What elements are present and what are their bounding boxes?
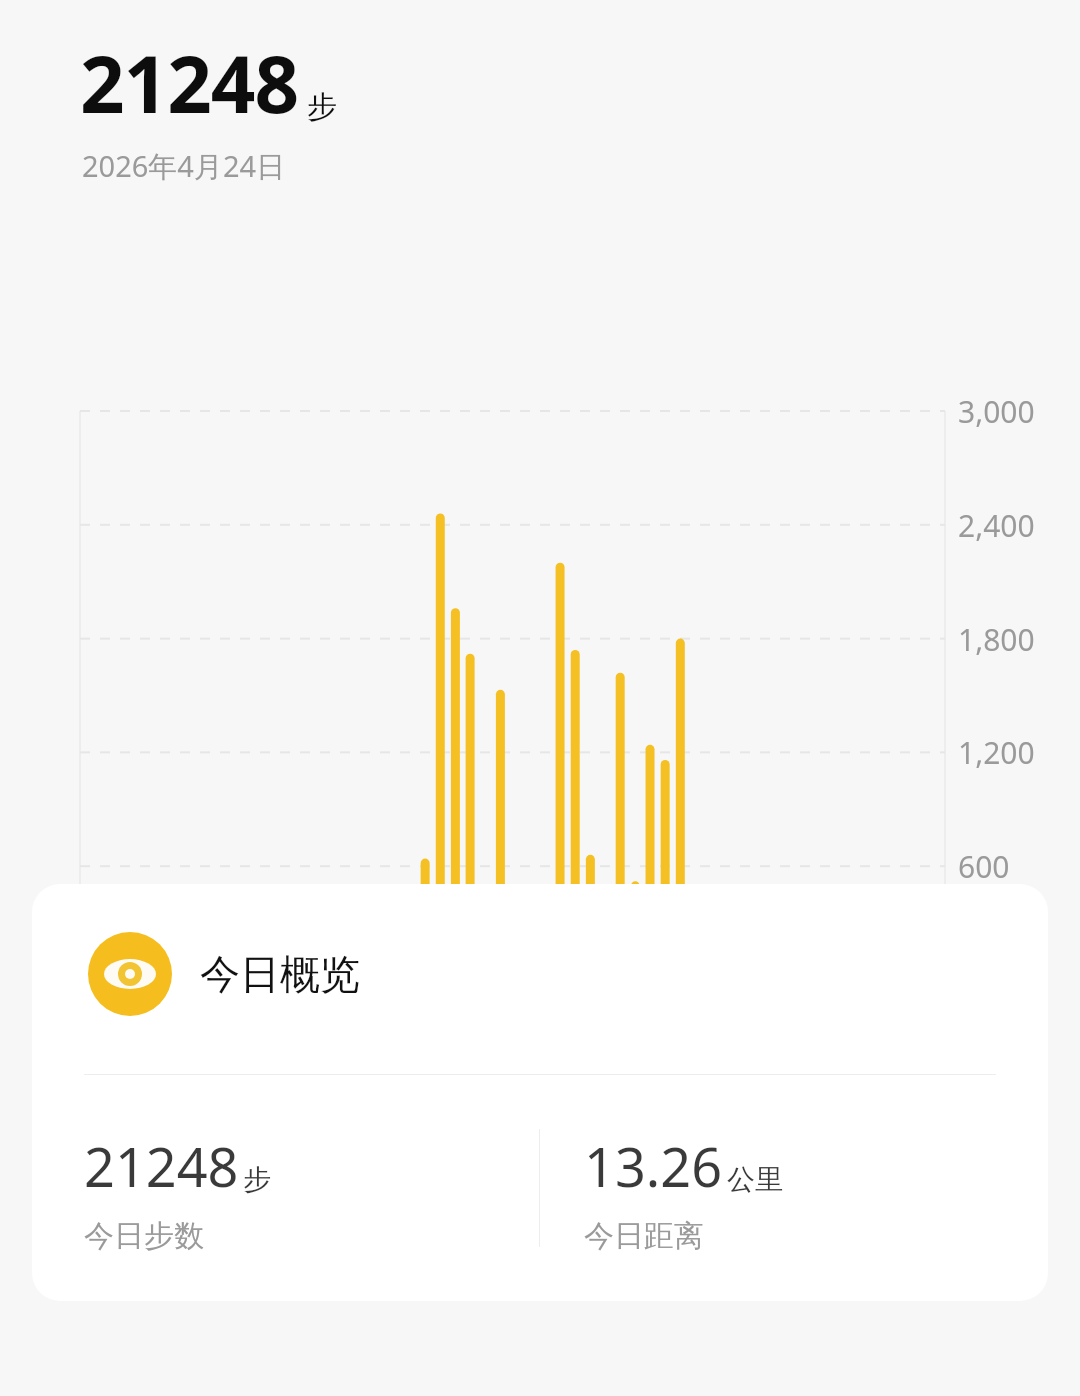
staticText: 13.26 bbox=[584, 1129, 723, 1203]
staticText: 2,400 bbox=[958, 505, 1035, 546]
staticText: 3,000 bbox=[958, 391, 1035, 432]
staticText: 今日距离 bbox=[584, 1217, 704, 1255]
staticText: 步 bbox=[307, 88, 337, 126]
staticText: 1,800 bbox=[958, 619, 1035, 660]
button[interactable]: 今日概览 bbox=[32, 884, 1048, 1301]
staticText: 21248 bbox=[80, 30, 299, 136]
staticText: 2026年4月24日 bbox=[82, 146, 286, 186]
staticText: 今日概览 bbox=[200, 949, 360, 999]
staticText: 公里 bbox=[727, 1162, 783, 1197]
staticText: 步 bbox=[243, 1162, 271, 1197]
staticText: 21248 bbox=[84, 1129, 239, 1203]
staticText: 600 bbox=[958, 846, 1010, 887]
staticText: 今日步数 bbox=[84, 1217, 204, 1255]
staticText: 1,200 bbox=[958, 732, 1035, 773]
staticText: 00:00 bbox=[22, 1003, 138, 1044]
